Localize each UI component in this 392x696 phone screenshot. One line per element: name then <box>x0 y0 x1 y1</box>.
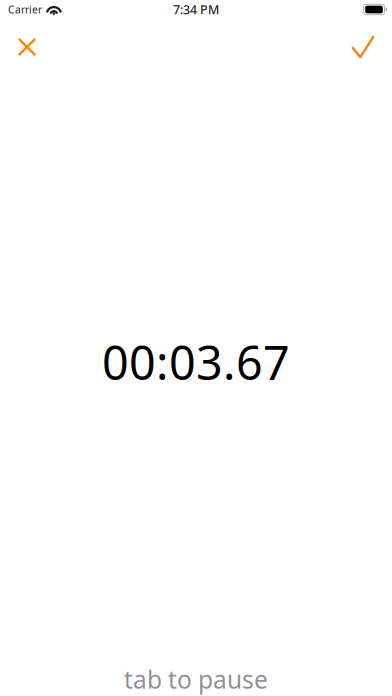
staticText: Carrier <box>8 2 42 17</box>
staticText: tab to pause <box>124 663 268 696</box>
staticText: 00:03.67 <box>102 331 290 393</box>
staticText: 7:34 PM <box>173 1 219 18</box>
button[interactable]: Done <box>340 24 386 70</box>
button[interactable]: Cancel <box>4 24 50 70</box>
button[interactable]: 00:03.67 <box>0 75 392 696</box>
